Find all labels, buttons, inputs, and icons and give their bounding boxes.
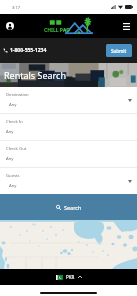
button[interactable]: Guests (0, 168, 137, 194)
staticText: Rentals Search (4, 69, 66, 81)
staticText: 3:17 (12, 5, 20, 10)
button[interactable]: Search (0, 194, 137, 220)
button[interactable]: Account (3, 19, 17, 33)
staticText: Any (9, 183, 17, 189)
button[interactable]: Destination (0, 87, 137, 113)
button[interactable]: 1-800-555-1234 (3, 47, 47, 54)
staticText: Any (6, 156, 14, 162)
staticText: Submit (111, 48, 127, 54)
staticText: Guests (6, 173, 20, 179)
staticText: Check Out (6, 146, 27, 152)
staticText: CHILL PAD (44, 27, 70, 34)
button[interactable]: PKR (52, 272, 86, 282)
staticText: 1-800-555-1234 (10, 47, 47, 54)
staticText: Destination (6, 92, 29, 98)
staticText: Any (6, 129, 14, 135)
staticText: Any (9, 102, 17, 108)
other: Expand (128, 180, 132, 183)
button[interactable] (0, 220, 137, 269)
staticText: Check In (6, 119, 23, 125)
other: Expand (128, 99, 132, 102)
staticText: Search (64, 204, 82, 211)
button[interactable]: Check In (0, 114, 137, 140)
button[interactable]: Submit (106, 44, 132, 57)
staticText: PKR (66, 274, 75, 280)
button[interactable]: Check Out (0, 141, 137, 167)
button[interactable]: Menu (118, 18, 134, 34)
